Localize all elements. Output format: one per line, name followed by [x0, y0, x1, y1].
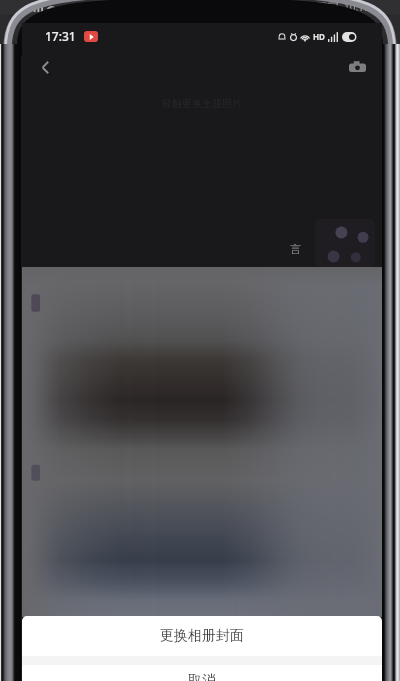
staticText: 更换相册封面 [160, 627, 244, 645]
staticText: 17:31 [45, 28, 76, 44]
button[interactable]: 更换相册封面 [22, 616, 382, 656]
staticText: 10:10 [344, 0, 370, 14]
staticText: 轻触更换主题照片 [162, 97, 242, 110]
button[interactable]: Back [28, 50, 62, 84]
staticText: 取消 [188, 672, 216, 681]
button[interactable]: 取消 [22, 665, 382, 681]
button[interactable]: Cover photo preview [315, 219, 375, 267]
staticText: K/s [62, 4, 71, 12]
staticText: 言 [290, 242, 301, 256]
staticText: HD [313, 31, 325, 42]
button[interactable]: Change cover photo [340, 50, 374, 84]
